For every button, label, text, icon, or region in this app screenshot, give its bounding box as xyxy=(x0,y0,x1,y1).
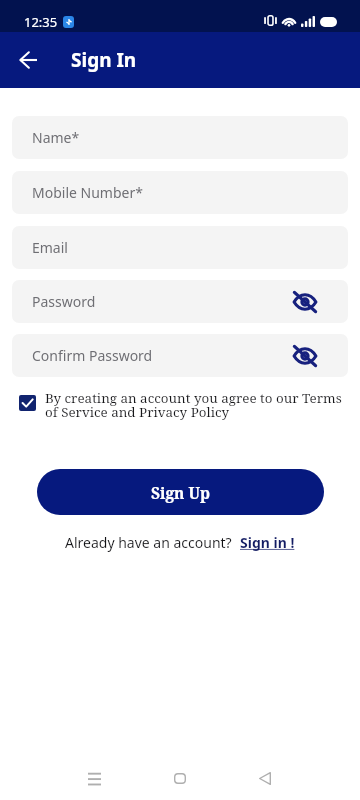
button[interactable]: Home xyxy=(160,758,200,798)
staticText: Sign In xyxy=(71,47,137,73)
button[interactable]: Email xyxy=(12,226,348,269)
staticText: Email xyxy=(32,238,68,257)
button[interactable]: Mobile Number* xyxy=(12,171,348,214)
button[interactable]: Sign in ! xyxy=(240,533,295,552)
button[interactable]: Back xyxy=(245,758,285,798)
button[interactable]: Recent apps xyxy=(74,758,114,798)
staticText: 12:35 xyxy=(24,13,58,31)
staticText: Sign Up xyxy=(151,482,211,503)
button[interactable]: Sign Up xyxy=(37,469,324,515)
button[interactable]: Agree to terms xyxy=(19,395,36,411)
button[interactable]: Toggle password visibility xyxy=(291,288,319,316)
button[interactable]: Confirm Password xyxy=(12,334,348,377)
button[interactable]: Back xyxy=(12,44,44,76)
staticText: Name* xyxy=(32,128,80,147)
button[interactable]: Password xyxy=(12,280,348,323)
staticText: Sign in ! xyxy=(240,533,295,552)
staticText: Already have an account? xyxy=(65,533,232,552)
staticText: By creating an account you agree to our … xyxy=(45,389,347,421)
staticText: Mobile Number* xyxy=(32,183,143,202)
staticText: Confirm Password xyxy=(32,346,153,365)
button[interactable]: Toggle password visibility xyxy=(291,342,319,370)
staticText: Password xyxy=(32,292,96,311)
button[interactable]: Name* xyxy=(12,116,348,159)
